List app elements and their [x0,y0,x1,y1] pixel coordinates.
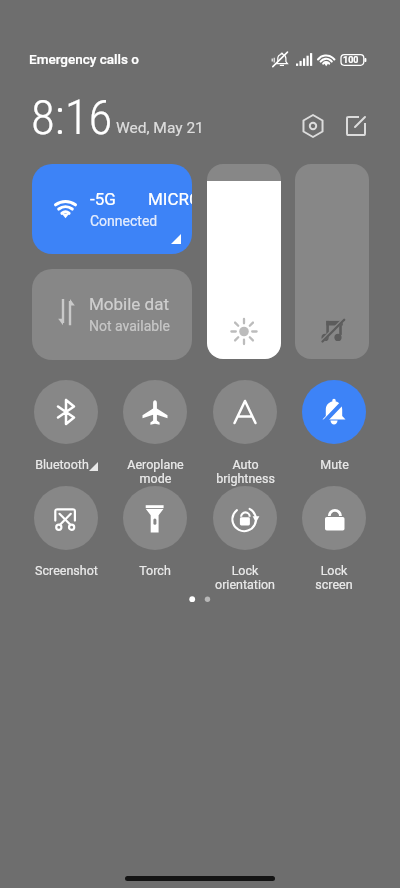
staticText: MICRO [148,189,192,209]
staticText: 100 [343,55,359,66]
button[interactable]: Bluetooth [22,380,110,472]
button[interactable]: Lock screen [290,486,378,593]
button[interactable]: Auto brightness [201,380,289,487]
button[interactable]: Mobile dat [32,269,192,360]
staticText: Wed, May 21 [116,119,204,137]
staticText: Bluetooth [35,457,89,472]
button[interactable]: Brightness [207,164,281,359]
staticText: Aeroplane mode [127,457,184,487]
staticText: Mobile dat [89,294,169,314]
staticText: Connected [90,213,158,229]
button[interactable]: Screenshot [22,486,110,578]
staticText: Not available [89,318,170,334]
button[interactable]: Aeroplane mode [111,380,199,487]
staticText: Lock orientation [215,563,275,593]
button[interactable]: -5G [32,164,192,254]
button[interactable]: Lock orientation [201,486,289,593]
button[interactable]: Volume [295,164,369,359]
staticText: 8:16 [31,89,113,146]
button[interactable]: Torch [111,486,199,578]
button[interactable]: Mute [290,380,378,472]
staticText: Emergency calls o [29,51,139,67]
staticText: Lock screen [315,563,353,593]
staticText: -5G [90,189,116,209]
staticText: Torch [139,563,171,578]
staticText: Screenshot [35,563,98,578]
button[interactable]: Settings [298,111,328,141]
staticText: Auto brightness [216,457,275,487]
button[interactable]: Edit [341,111,371,141]
staticText: Mute [320,457,349,472]
